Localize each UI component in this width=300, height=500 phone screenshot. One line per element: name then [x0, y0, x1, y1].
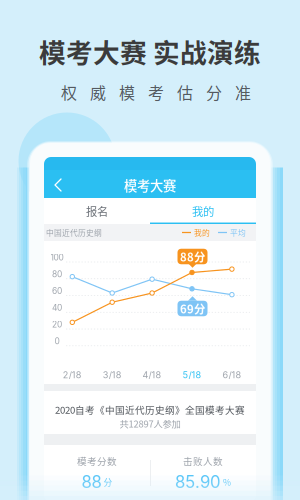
button[interactable]: 报名 — [44, 198, 150, 224]
staticText: 中国近代历史纲 — [46, 227, 102, 238]
staticText: 6/18 — [222, 369, 241, 380]
button[interactable]: 我的 — [150, 198, 256, 224]
staticText: 模考分数 — [77, 454, 117, 468]
staticText: 5/18 — [182, 369, 201, 380]
staticText: 我的 — [194, 227, 210, 238]
staticText: 20 — [52, 319, 62, 330]
staticText: 2/18 — [63, 369, 82, 380]
button[interactable]: 6/18 — [214, 367, 250, 383]
staticText: 权威模考估分准 — [61, 80, 251, 104]
button[interactable]: 5/18 — [174, 367, 210, 383]
staticText: 0 — [54, 336, 59, 346]
staticText: % — [223, 476, 231, 488]
button[interactable]: 2/18 — [54, 367, 90, 383]
staticText: 共12897人参加 — [119, 417, 180, 430]
staticText: 40 — [52, 303, 62, 313]
staticText: 4/18 — [143, 369, 162, 380]
staticText: 2020自考《中国近代历史纲》全国模考大赛 — [55, 402, 245, 416]
staticText: 模考大赛 — [124, 175, 176, 195]
staticText: 分 — [103, 476, 112, 488]
staticText: 88分 — [180, 248, 205, 265]
staticText: 模考大赛 实战演练 — [39, 32, 261, 70]
staticText: 击败人数 — [183, 454, 223, 468]
staticText: 69分 — [180, 300, 205, 317]
staticText: 60 — [52, 286, 62, 296]
staticText: 85.90 — [175, 472, 221, 492]
staticText: 88 — [81, 472, 101, 492]
button[interactable]: 3/18 — [94, 367, 130, 383]
staticText: 报名 — [86, 203, 108, 219]
staticText: 80 — [52, 269, 62, 279]
staticText: 平均 — [230, 227, 246, 238]
staticText: 100 — [50, 252, 63, 263]
button[interactable]: 4/18 — [134, 367, 170, 383]
button[interactable]: 返回 — [47, 174, 69, 196]
staticText: 我的 — [192, 203, 214, 219]
staticText: 3/18 — [103, 369, 122, 380]
